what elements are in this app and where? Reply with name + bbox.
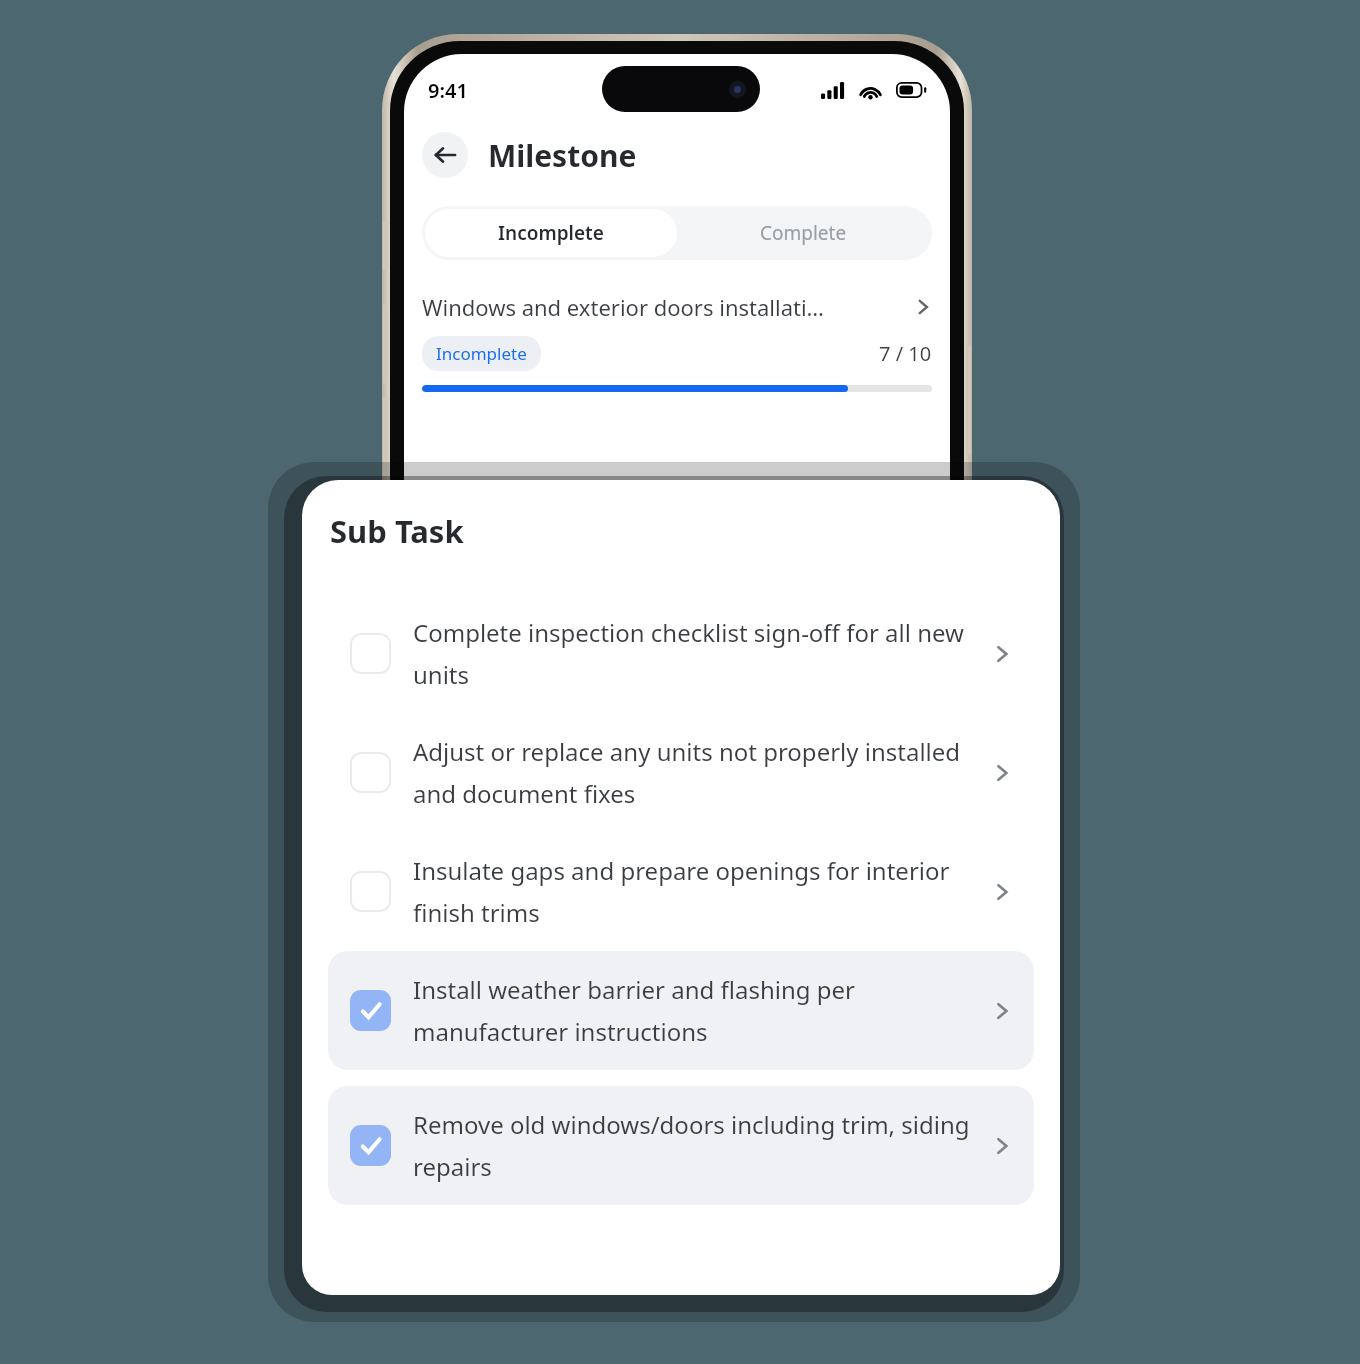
staticText: Complete inspection checklist sign-off f… (413, 616, 978, 691)
button[interactable]: Insulate gaps and prepare openings for i… (328, 832, 1034, 951)
button[interactable]: Back (422, 132, 468, 178)
button[interactable]: Install weather barrier and flashing per… (328, 951, 1034, 1070)
button[interactable]: Windows and exterior doors installati… (422, 292, 932, 392)
button[interactable]: Complete (677, 209, 929, 257)
staticText: Complete (760, 220, 847, 246)
staticText: Remove old windows/doors including trim,… (413, 1108, 978, 1183)
button[interactable]: Remove old windows/doors including trim,… (328, 1086, 1034, 1205)
staticText: Adjust or replace any units not properly… (413, 735, 978, 810)
staticText: 9:41 (428, 77, 468, 104)
staticText: 7 / 10 (879, 340, 932, 367)
button[interactable]: Adjust or replace any units not properly… (328, 713, 1034, 832)
staticText: Insulate gaps and prepare openings for i… (413, 854, 978, 929)
staticText: Incomplete (498, 220, 604, 246)
staticText: Incomplete (436, 342, 527, 365)
button[interactable]: Complete inspection checklist sign-off f… (328, 594, 1034, 713)
staticText: Install weather barrier and flashing per… (413, 973, 978, 1048)
button[interactable]: Incomplete (425, 209, 677, 257)
staticText: Milestone (488, 135, 637, 176)
staticText: Sub Task (330, 510, 464, 552)
staticText: Windows and exterior doors installati… (422, 292, 906, 322)
